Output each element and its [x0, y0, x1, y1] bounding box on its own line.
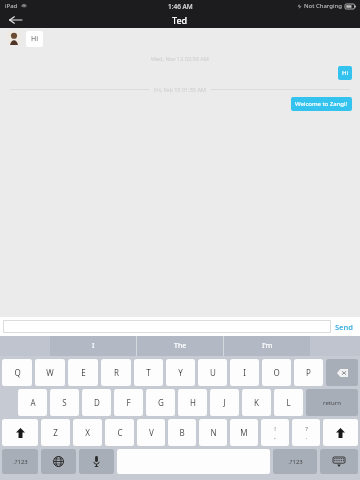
button[interactable]: return — [306, 389, 358, 416]
staticText: Q — [14, 367, 21, 378]
button[interactable]: Q — [2, 359, 32, 386]
button[interactable]: Hi — [342, 69, 348, 77]
button[interactable]: I — [230, 359, 259, 386]
staticText: W — [46, 367, 54, 378]
button[interactable]: .?123 — [273, 449, 317, 474]
staticText: S — [62, 397, 67, 408]
button[interactable]: S — [50, 389, 79, 416]
staticText: U — [210, 367, 216, 378]
button[interactable]: O — [262, 359, 291, 386]
staticText: O — [273, 367, 280, 378]
button[interactable]: W — [35, 359, 65, 386]
staticText: Fri, Feb 13 01:55 AM — [154, 86, 206, 93]
button[interactable]: M — [230, 419, 258, 446]
button[interactable]: E — [68, 359, 98, 386]
staticText: Not Charging — [304, 2, 342, 10]
staticText: T — [146, 367, 151, 378]
staticText: 1:46 AM — [168, 2, 193, 11]
staticText: Hi — [31, 34, 38, 44]
staticText: C — [117, 427, 123, 438]
button[interactable]: A — [18, 389, 47, 416]
button[interactable]: Shift — [2, 419, 38, 446]
button[interactable]: Change keyboard language — [41, 449, 76, 474]
staticText: ? . — [305, 425, 308, 441]
button[interactable]: T — [134, 359, 163, 386]
button[interactable]: V — [137, 419, 165, 446]
staticText: iPad — [5, 2, 18, 10]
staticText: E — [81, 367, 86, 378]
button[interactable]: B — [168, 419, 196, 446]
button[interactable]: U — [198, 359, 227, 386]
staticText: A — [30, 397, 36, 408]
button[interactable]: Y — [166, 359, 195, 386]
staticText: Welcome to Zangi! — [295, 100, 348, 108]
button[interactable]: Send — [335, 322, 353, 332]
staticText: .?123 — [13, 458, 28, 466]
staticText: K — [254, 397, 259, 408]
staticText: L — [286, 397, 291, 408]
staticText: return — [323, 399, 341, 407]
button[interactable]: J — [210, 389, 239, 416]
button[interactable] — [3, 320, 331, 333]
button[interactable]: N — [199, 419, 227, 446]
button[interactable]: Hide keyboard — [320, 449, 358, 474]
staticText: Y — [178, 367, 183, 378]
staticText: X — [85, 427, 90, 438]
button[interactable]: X — [73, 419, 102, 446]
button[interactable]: C — [105, 419, 134, 446]
button[interactable]: D — [82, 389, 111, 416]
button[interactable]: F — [114, 389, 143, 416]
staticText: P — [306, 367, 311, 378]
button[interactable]: ! , — [261, 419, 289, 446]
staticText: .?123 — [288, 458, 303, 466]
button[interactable]: Welcome to Zangi! — [295, 100, 348, 108]
staticText: H — [190, 397, 196, 408]
button[interactable]: H — [178, 389, 207, 416]
button[interactable]: R — [101, 359, 131, 386]
staticText: N — [210, 427, 217, 438]
button[interactable]: L — [274, 389, 303, 416]
staticText: The — [174, 341, 187, 351]
staticText: Wed, Nov 12 02:56 AM — [151, 55, 209, 62]
staticText: B — [179, 427, 185, 438]
staticText: I — [92, 341, 95, 351]
staticText: M — [240, 427, 248, 438]
staticText: R — [114, 367, 119, 378]
staticText: Send — [335, 322, 353, 332]
button[interactable]: G — [146, 389, 175, 416]
staticText: Ted — [172, 14, 188, 26]
button[interactable]: I'm — [224, 336, 310, 356]
button[interactable]: Back — [4, 12, 26, 28]
button[interactable]: I — [50, 336, 136, 356]
button[interactable]: The — [137, 336, 223, 356]
staticText: I — [243, 367, 246, 378]
button[interactable]: Hi — [31, 34, 38, 44]
button[interactable]: Shift — [323, 419, 358, 446]
staticText: J — [223, 397, 226, 408]
button[interactable]: P — [294, 359, 323, 386]
button[interactable]: ? . — [292, 419, 320, 446]
button[interactable]: .?123 — [2, 449, 38, 474]
staticText: Hi — [342, 69, 348, 77]
staticText: V — [149, 427, 154, 438]
staticText: ! , — [274, 425, 276, 441]
button[interactable]: Dictation — [79, 449, 114, 474]
staticText: G — [158, 397, 164, 408]
staticText: F — [126, 397, 131, 408]
button[interactable]: Backspace — [326, 359, 358, 386]
staticText: D — [94, 397, 100, 408]
staticText: Z — [53, 427, 58, 438]
button[interactable]: Z — [41, 419, 70, 446]
staticText: I'm — [262, 341, 273, 351]
button[interactable]: K — [242, 389, 271, 416]
